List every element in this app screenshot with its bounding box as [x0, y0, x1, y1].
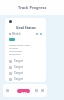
button[interactable]: Plans: [33, 84, 39, 97]
button[interactable]: Home: [3, 84, 12, 97]
staticText: consectetur adipiscing: [9, 49, 31, 55]
staticText: Target: [14, 77, 23, 81]
button[interactable]: Stats: [17, 89, 30, 93]
button[interactable]: Target: [9, 76, 29, 82]
staticText: Goal Status: [16, 25, 36, 30]
staticText: Weekly: [12, 32, 21, 35]
staticText: Stats: [21, 90, 27, 93]
button[interactable]: Profile: [39, 84, 45, 97]
button[interactable]: Target: [9, 64, 29, 70]
staticText: Lorem ipsum dolor sit amet: [9, 43, 31, 49]
button[interactable]: Target: [9, 58, 29, 64]
staticText: Target: [14, 59, 23, 63]
staticText: Track Progress: [18, 5, 47, 10]
button[interactable]: Target: [9, 70, 29, 76]
staticText: Target: [14, 71, 23, 75]
staticText: Target: [14, 65, 23, 69]
